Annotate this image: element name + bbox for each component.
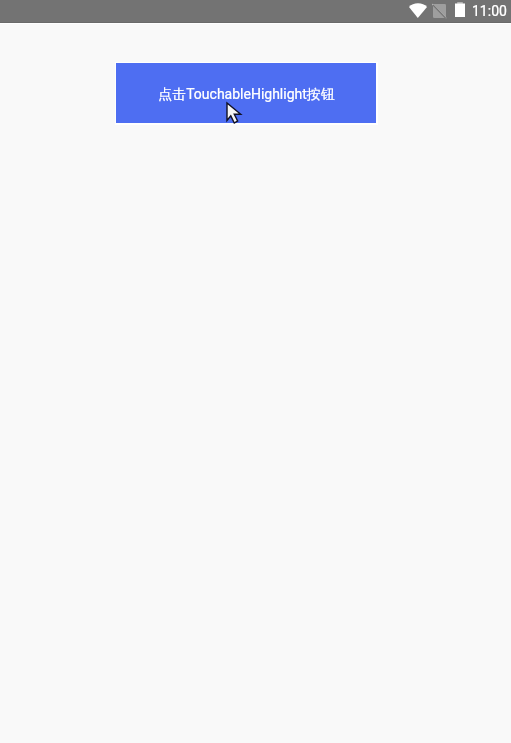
other: Wi-Fi connected bbox=[409, 3, 427, 18]
other: No SIM card bbox=[433, 4, 446, 18]
button[interactable]: 点击TouchableHighlight按钮 bbox=[115, 62, 378, 125]
staticText: 11:00 bbox=[472, 3, 507, 19]
staticText: 点击TouchableHighlight按钮 bbox=[158, 86, 335, 104]
other: Battery full bbox=[455, 2, 465, 17]
